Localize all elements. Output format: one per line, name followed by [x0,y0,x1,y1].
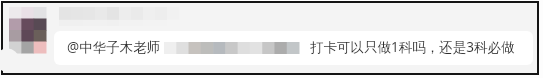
button[interactable]: @中华子木老师 [54,31,533,65]
staticText: @中华子木老师 [67,38,161,56]
button[interactable]: User avatar [9,7,46,53]
staticText: 打卡可以只做1科吗，还是3科必做 [310,38,515,56]
